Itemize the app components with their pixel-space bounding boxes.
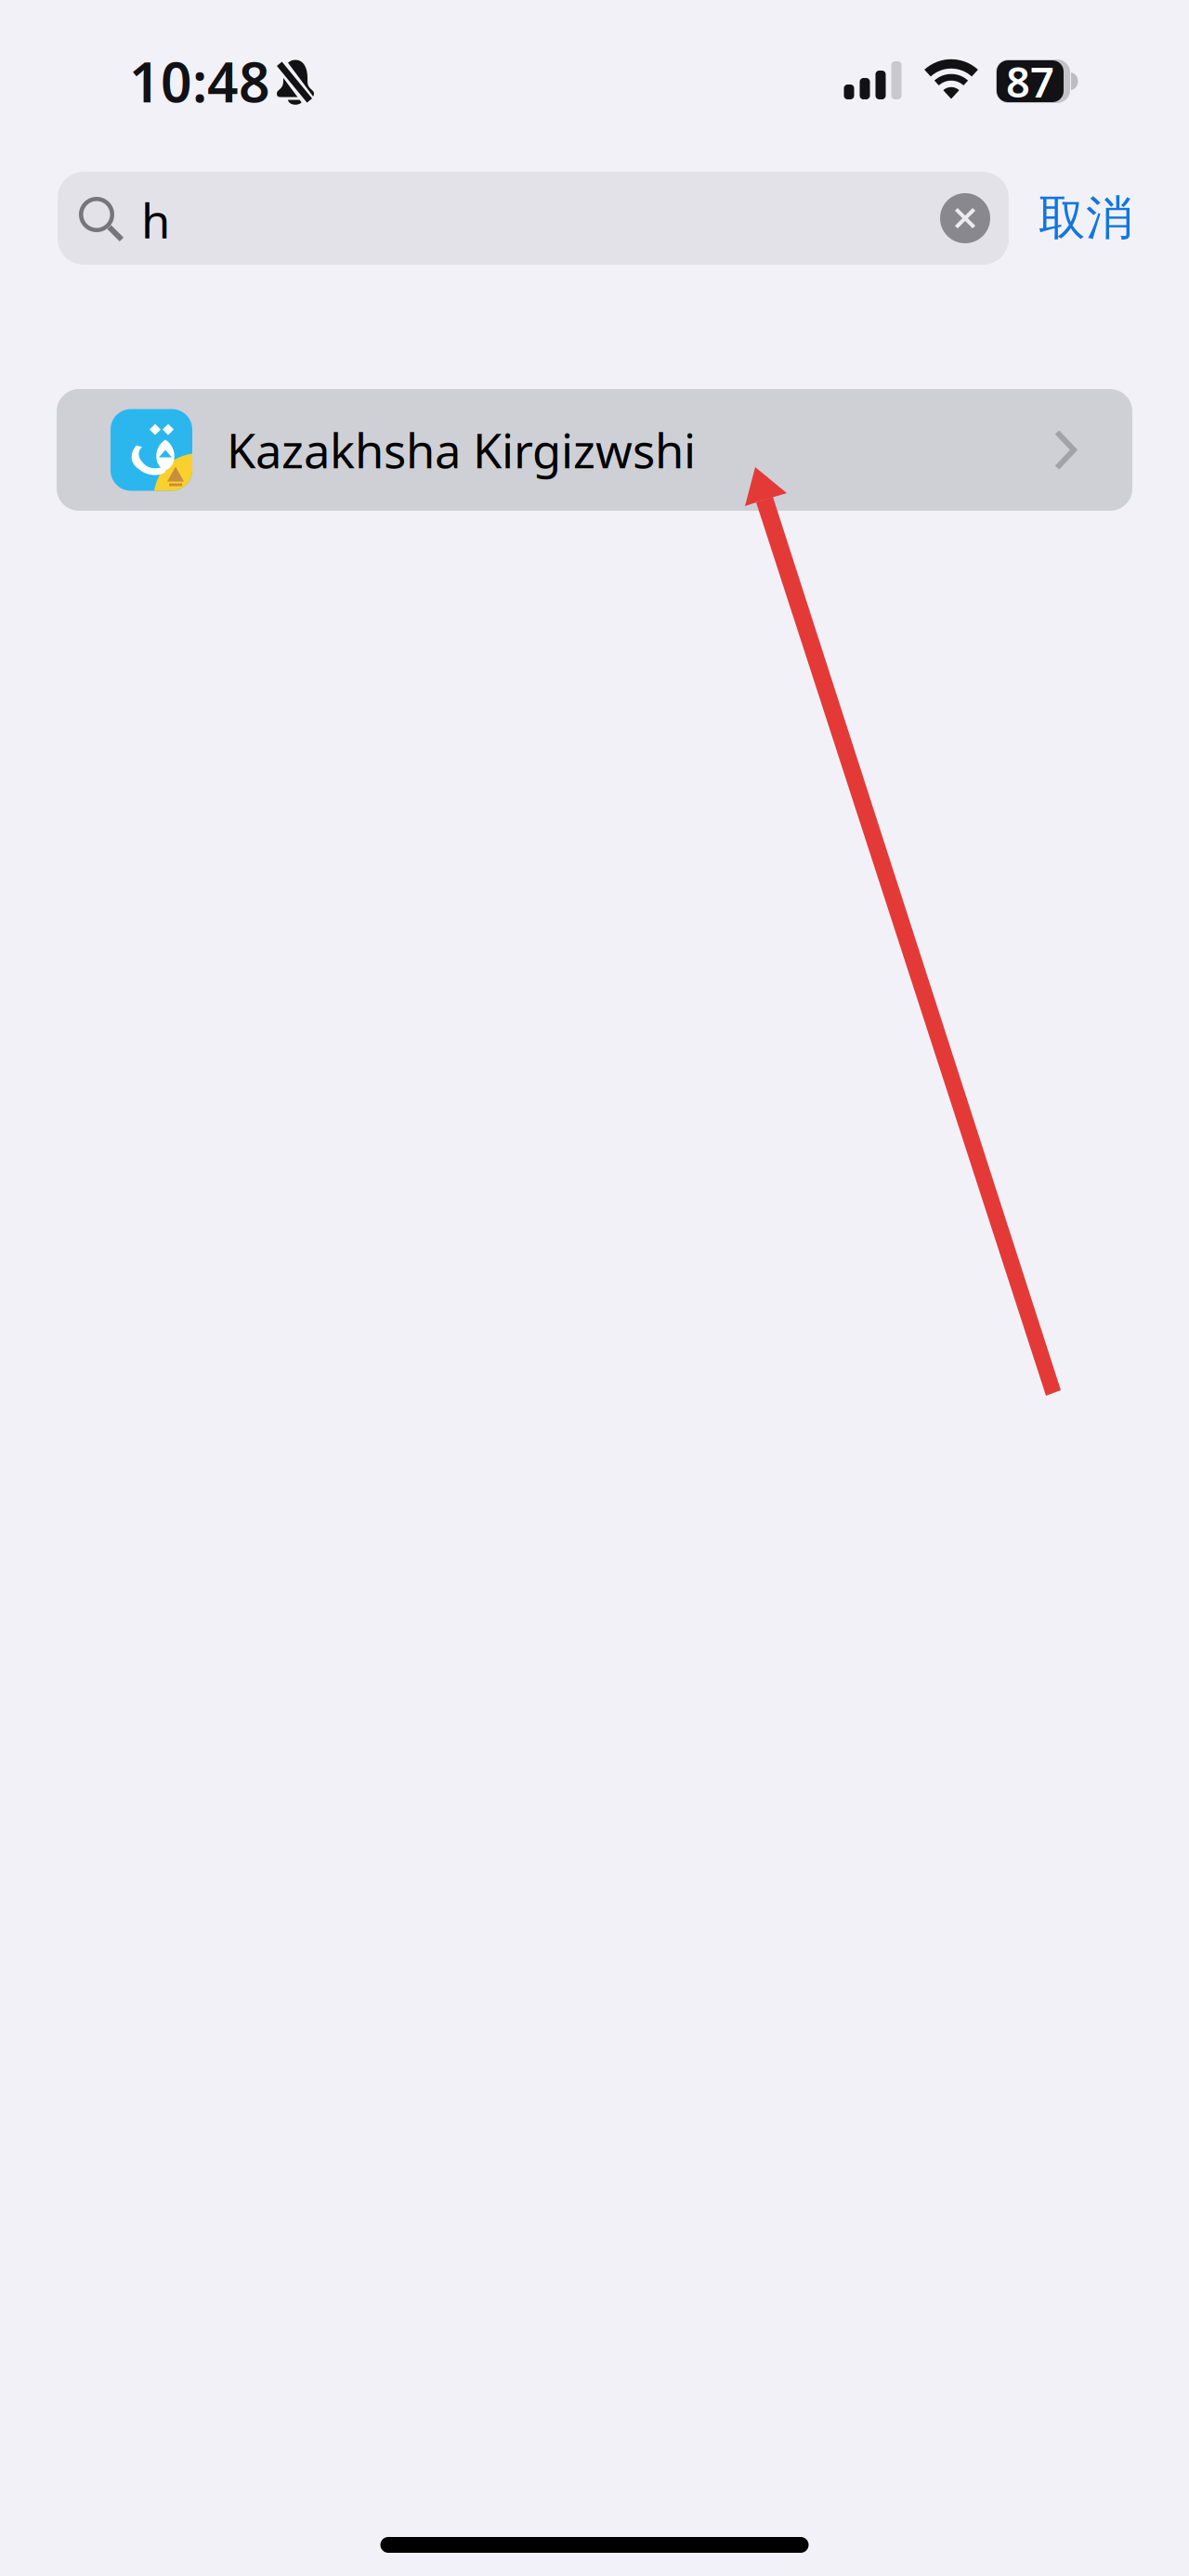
button[interactable]: Clear search text <box>940 193 990 243</box>
button[interactable]: 取消 <box>1009 172 1163 265</box>
staticText: 10:48 <box>129 45 270 117</box>
staticText: 87 <box>1006 53 1054 109</box>
staticText: 取消 <box>1039 189 1133 247</box>
staticText: h <box>141 189 170 251</box>
staticText: Kazakhsha Kirgizwshi <box>227 419 696 481</box>
button[interactable]: Search field, h <box>58 172 1009 265</box>
button[interactable]: Kazakhsha Kirgizwshi <box>57 389 1132 511</box>
